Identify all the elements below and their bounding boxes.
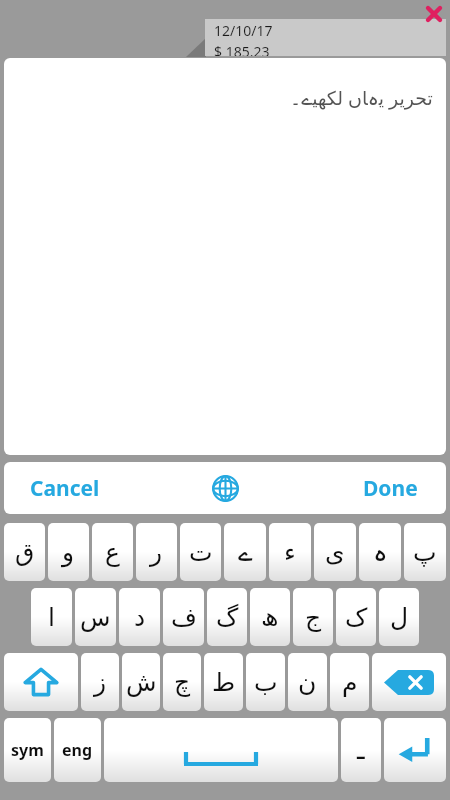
staticText: ع	[105, 538, 120, 567]
staticText: ق	[15, 538, 35, 567]
staticText: ی	[325, 538, 345, 567]
button[interactable]: ہ	[359, 523, 401, 581]
button[interactable]: ش	[122, 653, 160, 711]
button[interactable]: ھ	[250, 588, 290, 646]
button[interactable]: ل	[379, 588, 419, 646]
staticText: ن	[298, 668, 317, 697]
button[interactable]: ط	[204, 653, 243, 711]
button[interactable]: ا	[31, 588, 72, 646]
button[interactable]: ء	[269, 523, 311, 581]
button[interactable]: Switch language	[203, 466, 247, 510]
staticText: ف	[171, 603, 197, 632]
button[interactable]: ق	[4, 523, 45, 581]
button[interactable]: ز	[81, 653, 119, 711]
button[interactable]: ع	[92, 523, 133, 581]
button[interactable]: 12/10/17	[205, 19, 446, 56]
button[interactable]: ن	[288, 653, 327, 711]
button[interactable]: Shift	[4, 653, 78, 711]
button[interactable]: س	[75, 588, 116, 646]
staticText: ط	[212, 668, 236, 697]
button[interactable]: ی	[314, 523, 356, 581]
staticText: ہ	[373, 538, 388, 567]
button[interactable]: Cancel	[30, 474, 100, 503]
button[interactable]: ف	[163, 588, 204, 646]
button[interactable]: و	[48, 523, 89, 581]
button[interactable]: eng	[54, 718, 101, 782]
staticText: ب	[254, 668, 278, 697]
staticText: س	[80, 603, 111, 632]
staticText: sym	[11, 739, 44, 761]
button[interactable]: د	[119, 588, 160, 646]
button[interactable]: ـ	[341, 718, 381, 782]
staticText: Done	[363, 474, 418, 503]
button[interactable]: Done	[363, 474, 418, 503]
button[interactable]: تحریر یہاں لکھیے۔	[4, 58, 446, 455]
staticText: پ	[413, 538, 437, 567]
staticText: Cancel	[30, 474, 100, 503]
staticText: گ	[216, 603, 239, 632]
staticText: ے	[238, 538, 253, 567]
staticText: 12/10/17	[214, 21, 273, 40]
staticText: ا	[48, 603, 55, 632]
button[interactable]: ت	[180, 523, 221, 581]
button[interactable]: sym	[4, 718, 51, 782]
button[interactable]: Space	[104, 718, 338, 782]
staticText: چ	[174, 668, 191, 697]
staticText: د	[134, 603, 146, 632]
button[interactable]: ر	[136, 523, 177, 581]
button[interactable]: ے	[224, 523, 266, 581]
staticText: ھ	[261, 603, 279, 632]
staticText: و	[62, 538, 75, 567]
button[interactable]: ک	[336, 588, 376, 646]
staticText: ک	[345, 603, 368, 632]
button[interactable]: گ	[207, 588, 247, 646]
button[interactable]: Enter	[384, 718, 446, 782]
staticText: ت	[189, 538, 213, 567]
staticText: ر	[150, 538, 163, 567]
staticText: تحریر یہاں لکھیے۔	[290, 85, 433, 111]
staticText: ـ	[357, 735, 365, 765]
button[interactable]: ب	[246, 653, 285, 711]
button[interactable]: Close	[420, 0, 448, 28]
button[interactable]: Backspace	[372, 653, 446, 711]
button[interactable]: چ	[163, 653, 201, 711]
button[interactable]: ج	[293, 588, 333, 646]
staticText: eng	[62, 739, 93, 761]
staticText: ء	[284, 538, 296, 567]
staticText: ش	[126, 668, 157, 697]
staticText: م	[342, 668, 358, 697]
button[interactable]: م	[330, 653, 369, 711]
staticText: ز	[94, 668, 107, 697]
button[interactable]: پ	[404, 523, 446, 581]
staticText: ل	[390, 603, 409, 632]
staticText: ج	[305, 603, 322, 632]
staticText: $ 185.23	[214, 42, 270, 56]
